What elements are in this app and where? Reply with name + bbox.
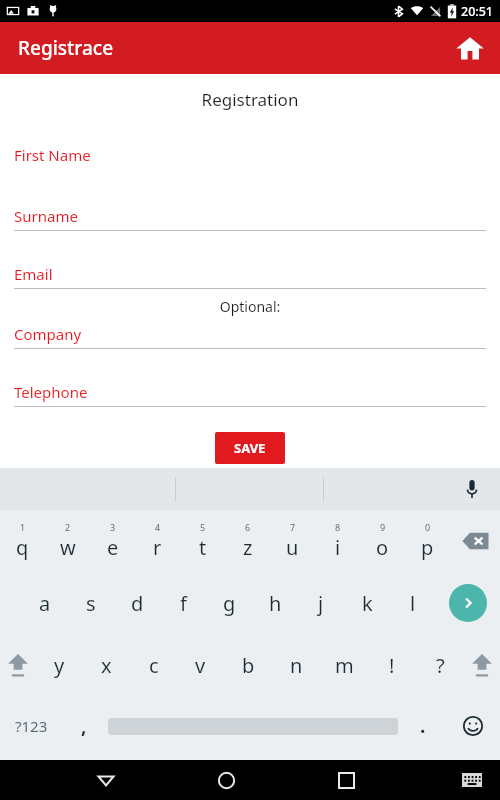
staticText: f: [180, 590, 187, 617]
button[interactable]: Shift: [464, 637, 500, 693]
staticText: c: [149, 652, 159, 679]
staticText: p: [421, 534, 434, 561]
staticText: ,: [81, 713, 87, 739]
button[interactable]: Home: [444, 22, 496, 74]
button[interactable]: .: [400, 696, 446, 756]
staticText: z: [243, 534, 253, 561]
button[interactable]: Shift: [0, 637, 36, 693]
button[interactable]: Emoji: [446, 696, 500, 756]
staticText: y: [54, 652, 65, 679]
staticText: .: [420, 713, 426, 739]
staticText: w: [60, 534, 76, 561]
button[interactable]: !: [368, 634, 416, 696]
staticText: q: [16, 534, 29, 561]
button[interactable]: ?123: [0, 696, 62, 756]
button[interactable]: 9: [360, 510, 405, 572]
staticText: a: [39, 590, 51, 617]
button[interactable]: Surname: [0, 206, 500, 231]
button[interactable]: h: [252, 572, 298, 634]
button[interactable]: 2: [45, 510, 90, 572]
staticText: Telephone: [14, 382, 88, 402]
button[interactable]: Company: [0, 324, 500, 349]
staticText: t: [199, 534, 207, 561]
button[interactable]: Home: [204, 760, 248, 800]
staticText: n: [290, 652, 303, 679]
button[interactable]: m: [320, 634, 368, 696]
staticText: 2: [65, 521, 71, 533]
staticText: Registrace: [18, 35, 114, 61]
button[interactable]: 5: [180, 510, 225, 572]
staticText: 3: [110, 521, 116, 533]
button[interactable]: y: [36, 634, 83, 696]
staticText: v: [195, 652, 206, 679]
staticText: l: [410, 590, 416, 617]
button[interactable]: Email: [0, 264, 500, 289]
button[interactable]: Voice input: [458, 475, 486, 503]
staticText: o: [376, 534, 389, 561]
staticText: 1: [20, 521, 26, 533]
button[interactable]: Switch keyboard: [452, 760, 492, 800]
staticText: ?: [436, 652, 445, 679]
button[interactable]: a: [22, 572, 68, 634]
button[interactable]: 7: [270, 510, 315, 572]
button[interactable]: First Name: [0, 145, 500, 170]
button[interactable]: f: [160, 572, 206, 634]
staticText: u: [286, 534, 299, 561]
button[interactable]: Back: [84, 760, 128, 800]
staticText: j: [318, 590, 324, 617]
button[interactable]: l: [390, 572, 436, 634]
staticText: k: [362, 590, 373, 617]
staticText: Surname: [14, 206, 78, 226]
staticText: 7: [290, 521, 296, 533]
button[interactable]: ?: [416, 634, 464, 696]
staticText: 9: [380, 521, 386, 533]
staticText: i: [335, 534, 341, 561]
button[interactable]: Space: [106, 696, 400, 756]
button[interactable]: 0: [405, 510, 450, 572]
staticText: Company: [14, 324, 82, 344]
staticText: h: [269, 590, 282, 617]
button[interactable]: v: [177, 634, 224, 696]
button[interactable]: Telephone: [0, 382, 500, 407]
button[interactable]: n: [272, 634, 320, 696]
staticText: Optional:: [0, 297, 500, 316]
button[interactable]: 3: [90, 510, 135, 572]
staticText: Registration: [0, 88, 500, 111]
staticText: r: [153, 534, 162, 561]
staticText: 20:51: [461, 3, 494, 20]
staticText: 8: [335, 521, 341, 533]
staticText: Email: [14, 264, 53, 284]
staticText: First Name: [14, 145, 91, 165]
staticText: x: [101, 652, 112, 679]
button[interactable]: c: [130, 634, 177, 696]
staticText: 5: [200, 521, 206, 533]
button[interactable]: d: [114, 572, 160, 634]
button[interactable]: Recent apps: [324, 760, 368, 800]
staticText: s: [86, 590, 96, 617]
button[interactable]: x: [83, 634, 130, 696]
staticText: d: [131, 590, 144, 617]
staticText: 6: [245, 521, 251, 533]
button[interactable]: b: [224, 634, 272, 696]
staticText: e: [107, 534, 119, 561]
staticText: SAVE: [234, 439, 266, 457]
button[interactable]: ,: [62, 696, 106, 756]
staticText: ?123: [15, 716, 48, 736]
staticText: !: [389, 652, 395, 679]
staticText: 0: [425, 521, 431, 533]
button[interactable]: SAVE: [215, 432, 285, 464]
button[interactable]: j: [298, 572, 344, 634]
staticText: b: [242, 652, 255, 679]
staticText: m: [335, 652, 354, 679]
button[interactable]: 8: [315, 510, 360, 572]
button[interactable]: 4: [135, 510, 180, 572]
button[interactable]: k: [344, 572, 390, 634]
button[interactable]: Enter: [436, 572, 500, 634]
button[interactable]: 1: [0, 510, 45, 572]
button[interactable]: Backspace: [450, 510, 500, 572]
button[interactable]: s: [68, 572, 114, 634]
button[interactable]: 6: [225, 510, 270, 572]
staticText: g: [223, 590, 236, 617]
staticText: 4: [155, 521, 161, 533]
button[interactable]: g: [206, 572, 252, 634]
